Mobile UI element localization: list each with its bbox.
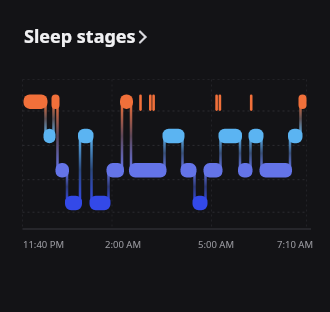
staticText: 5:00 AM xyxy=(198,238,235,251)
staticText: Sleep stages xyxy=(24,24,136,49)
staticText: 7:10 AM xyxy=(277,238,314,251)
button[interactable]: Sleep stages xyxy=(20,22,155,54)
staticText: 2:00 AM xyxy=(105,238,142,251)
staticText: 11:40 PM xyxy=(23,238,65,251)
